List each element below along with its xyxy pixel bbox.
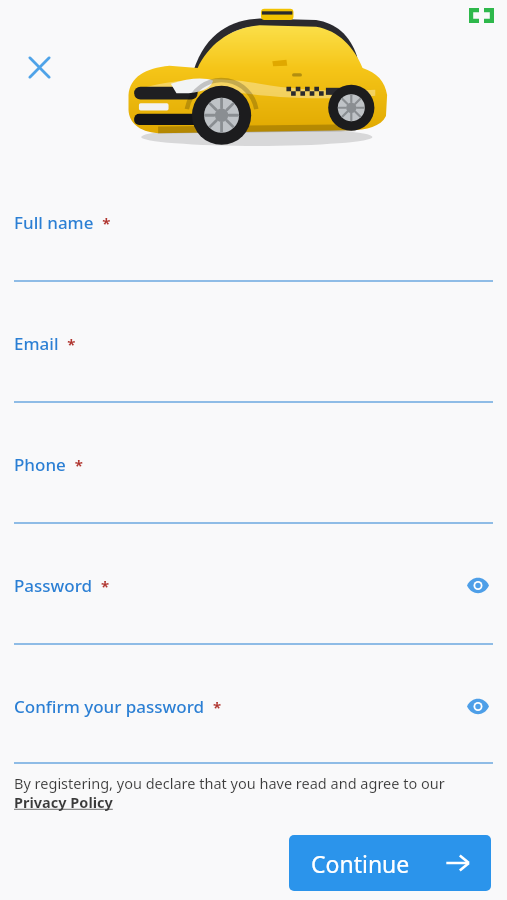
button[interactable]: Continue — [289, 835, 491, 891]
staticText: Full name * — [14, 211, 463, 234]
button[interactable]: Show password — [463, 691, 493, 721]
button[interactable]: Close — [18, 46, 60, 88]
button[interactable]: Connection status — [466, 4, 496, 26]
button[interactable]: Password * — [0, 524, 507, 645]
button[interactable]: Email * — [0, 282, 507, 403]
button[interactable]: Phone * — [0, 403, 507, 524]
staticText: Confirm your password * — [14, 695, 463, 718]
staticText: Password * — [14, 574, 463, 597]
staticText: Email * — [14, 332, 463, 355]
button[interactable]: Show password — [463, 570, 493, 600]
button[interactable]: Confirm your password * — [0, 645, 507, 764]
staticText: Continue — [311, 848, 410, 879]
button[interactable]: Full name * — [0, 160, 507, 282]
staticText: By registering, you declare that you hav… — [14, 773, 493, 812]
staticText: Phone * — [14, 453, 463, 476]
